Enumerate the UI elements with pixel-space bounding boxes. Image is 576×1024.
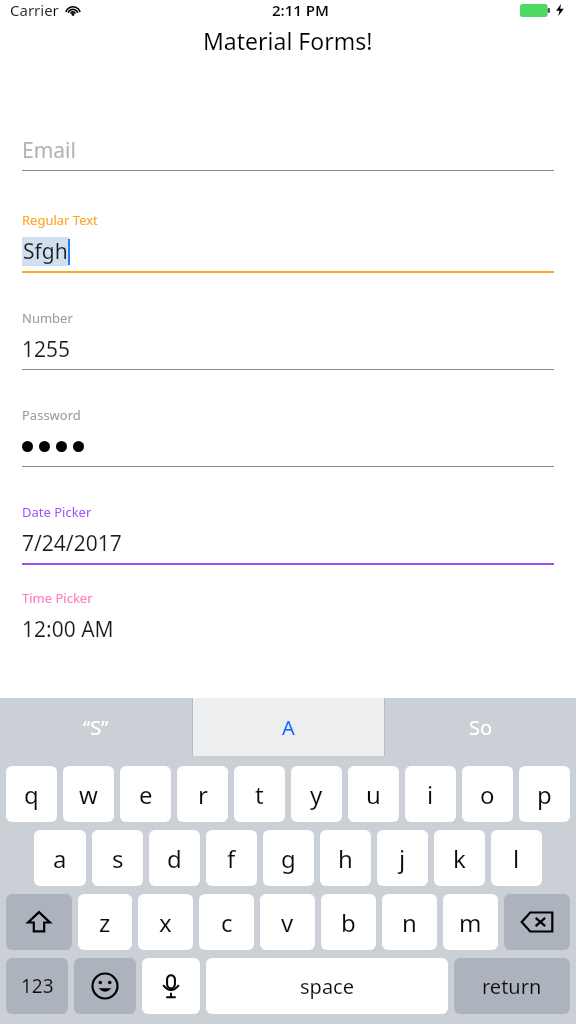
staticText: m — [459, 906, 482, 939]
staticText: l — [513, 842, 520, 875]
staticText: v — [281, 906, 294, 939]
staticText: y — [310, 778, 323, 811]
button[interactable]: y — [291, 766, 342, 822]
button[interactable]: So — [385, 698, 576, 756]
button[interactable]: 123 — [6, 958, 68, 1014]
staticText: “S” — [83, 714, 109, 741]
staticText: s — [112, 842, 124, 875]
button[interactable]: Delete — [504, 894, 570, 950]
staticText: b — [341, 906, 356, 939]
staticText: g — [281, 842, 296, 875]
button[interactable]: Date Picker — [22, 467, 554, 565]
staticText: Number — [22, 309, 73, 327]
button[interactable]: k — [434, 830, 485, 886]
staticText: u — [366, 778, 381, 811]
staticText: space — [300, 973, 354, 1000]
button[interactable]: Time Picker — [22, 565, 554, 651]
staticText: f — [227, 842, 236, 875]
button[interactable]: w — [63, 766, 114, 822]
staticText: Password — [22, 406, 81, 424]
button[interactable]: Email — [22, 134, 554, 171]
button[interactable]: s — [92, 830, 143, 886]
button[interactable]: x — [138, 894, 193, 950]
staticText: o — [480, 778, 495, 811]
staticText: k — [453, 842, 466, 875]
button[interactable]: A — [193, 698, 384, 756]
button[interactable]: m — [443, 894, 498, 950]
button[interactable]: b — [321, 894, 376, 950]
staticText: Regular Text — [22, 211, 98, 229]
button[interactable]: e — [120, 766, 171, 822]
button[interactable]: u — [348, 766, 399, 822]
staticText: z — [99, 906, 111, 939]
staticText: So — [469, 714, 493, 741]
button[interactable]: a — [34, 830, 86, 886]
staticText: i — [427, 778, 434, 811]
button[interactable]: c — [199, 894, 254, 950]
staticText: h — [338, 842, 353, 875]
staticText: 1255 — [22, 335, 71, 364]
staticText: p — [537, 778, 552, 811]
staticText: q — [24, 778, 39, 811]
staticText: 12:00 AM — [22, 615, 114, 644]
staticText: j — [399, 842, 406, 875]
staticText: 2:11 PM — [272, 0, 329, 20]
button[interactable]: j — [377, 830, 428, 886]
staticText: e — [139, 778, 153, 811]
button[interactable]: l — [491, 830, 542, 886]
staticText: 7/24/2017 — [22, 529, 122, 558]
staticText: Time Picker — [22, 589, 93, 607]
button[interactable]: d — [149, 830, 200, 886]
staticText: x — [159, 906, 172, 939]
button[interactable]: n — [382, 894, 437, 950]
button[interactable]: z — [78, 894, 132, 950]
button[interactable]: Password — [22, 370, 554, 467]
staticText: Email — [22, 136, 76, 165]
staticText: t — [255, 778, 264, 811]
button[interactable]: Dictate — [142, 958, 200, 1014]
staticText: 123 — [21, 973, 54, 999]
button[interactable]: Regular Text — [22, 171, 554, 273]
staticText: c — [221, 906, 233, 939]
staticText: Carrier — [10, 0, 59, 20]
button[interactable]: return — [454, 958, 570, 1014]
button[interactable]: Number — [22, 273, 554, 370]
staticText: n — [402, 906, 417, 939]
button[interactable]: “S” — [0, 698, 192, 756]
button[interactable]: f — [206, 830, 257, 886]
staticText: r — [198, 778, 208, 811]
staticText: a — [53, 842, 67, 875]
staticText: A — [282, 714, 295, 741]
button[interactable]: space — [206, 958, 448, 1014]
button[interactable]: t — [234, 766, 285, 822]
staticText: Sfgh — [23, 237, 68, 266]
staticText: return — [482, 973, 542, 1000]
staticText: Material Forms! — [203, 25, 373, 56]
staticText: d — [167, 842, 182, 875]
button[interactable]: i — [405, 766, 456, 822]
staticText: w — [79, 778, 98, 811]
button[interactable]: h — [320, 830, 371, 886]
staticText: Date Picker — [22, 503, 92, 521]
button[interactable]: q — [6, 766, 57, 822]
button[interactable]: g — [263, 830, 314, 886]
button[interactable]: Shift — [6, 894, 72, 950]
button[interactable]: p — [519, 766, 570, 822]
button[interactable]: v — [260, 894, 315, 950]
button[interactable]: r — [177, 766, 228, 822]
button[interactable]: o — [462, 766, 513, 822]
button[interactable]: Emoji — [74, 958, 136, 1014]
